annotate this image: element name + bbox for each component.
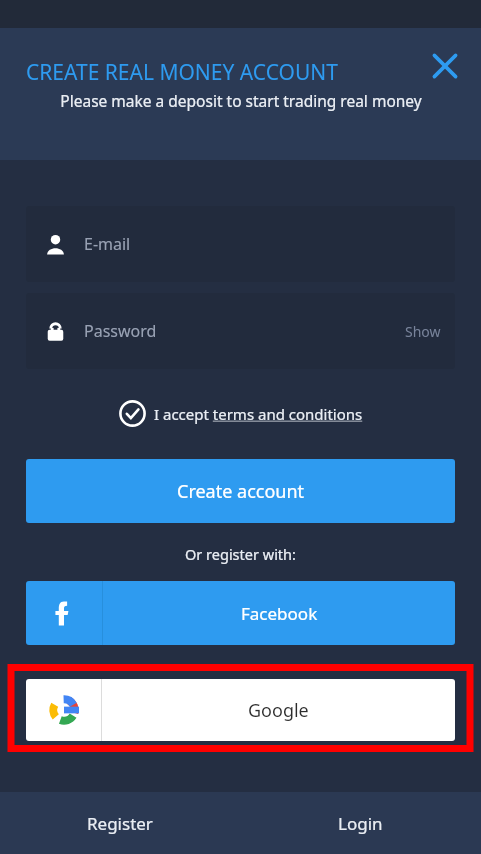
staticText: Login	[338, 812, 383, 835]
staticText: E-mail	[84, 233, 131, 255]
button[interactable]: Register	[0, 792, 240, 854]
staticText: Create account	[177, 479, 305, 504]
button[interactable]: Google	[26, 679, 455, 741]
button[interactable]: Close	[426, 47, 464, 85]
button[interactable]: Login	[240, 792, 481, 854]
staticText: Register	[87, 812, 153, 835]
staticText: Facebook	[241, 602, 318, 625]
staticText: Show	[405, 322, 441, 341]
button[interactable]: Create account	[26, 459, 455, 523]
staticText: Please make a deposit to start trading r…	[46, 90, 436, 111]
button[interactable]: Password	[26, 293, 455, 369]
staticText: Or register with:	[185, 544, 296, 564]
button[interactable]: I accept terms and conditions	[113, 396, 369, 431]
staticText: Password	[84, 320, 157, 342]
button[interactable]: E-mail	[26, 206, 455, 282]
staticText: Google	[248, 698, 309, 723]
staticText: CREATE REAL MONEY ACCOUNT	[26, 58, 338, 87]
staticText: I accept terms and conditions	[154, 404, 363, 424]
button[interactable]: Facebook	[26, 581, 455, 645]
button[interactable]: Show	[391, 312, 455, 351]
